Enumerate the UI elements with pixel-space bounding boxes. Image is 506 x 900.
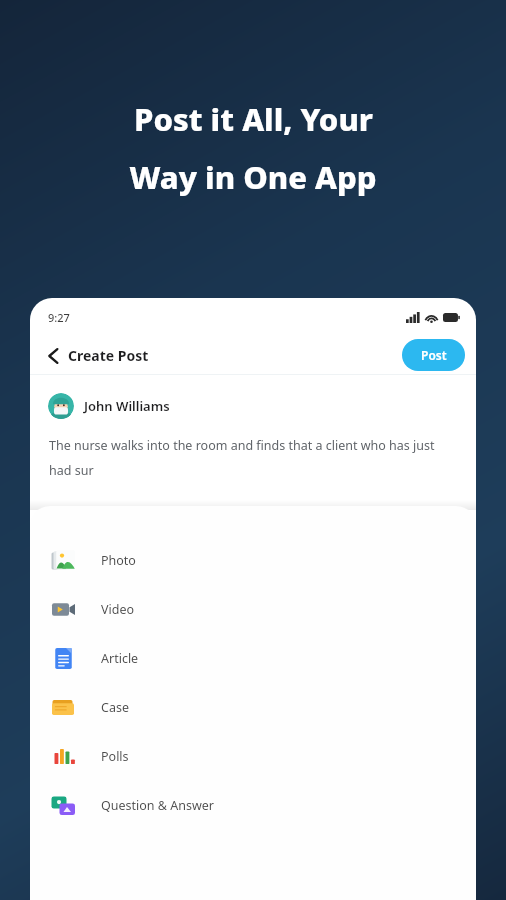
button[interactable]: Video [30, 585, 476, 634]
staticText: Way in One App [129, 156, 377, 198]
button[interactable]: Polls [30, 732, 476, 781]
staticText: 9:27 [48, 310, 70, 325]
staticText: Video [101, 601, 135, 618]
staticText: Post [421, 347, 447, 363]
staticText: Article [101, 650, 139, 667]
button[interactable]: Photo [30, 536, 476, 585]
staticText: Polls [101, 748, 129, 765]
button[interactable]: Article [30, 634, 476, 683]
staticText: Post it All, Your [134, 98, 373, 140]
button[interactable]: Post [402, 339, 465, 371]
button[interactable]: Question & Answer [30, 781, 476, 830]
button[interactable]: Back [42, 342, 155, 369]
other: Back [48, 348, 59, 364]
button[interactable]: Case [30, 683, 476, 732]
staticText: John Williams [84, 397, 170, 415]
staticText: Photo [101, 552, 136, 569]
staticText: Create Post [68, 346, 149, 365]
staticText: The nurse walks into the room and finds … [49, 437, 446, 478]
staticText: Case [101, 699, 129, 716]
staticText: Question & Answer [101, 797, 214, 814]
